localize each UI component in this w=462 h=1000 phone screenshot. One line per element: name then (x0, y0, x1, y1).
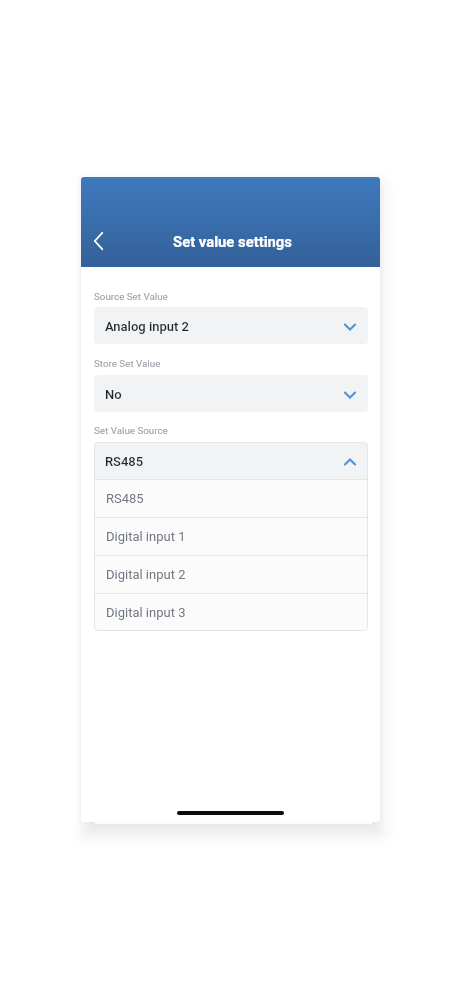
staticText: Analog input 2 (105, 319, 190, 334)
button[interactable]: RS485 (94, 480, 368, 517)
staticText: Set value settings (83, 233, 380, 250)
button[interactable]: Digital input 2 (94, 556, 368, 593)
staticText: Source Set Value (94, 291, 168, 302)
button[interactable]: No (94, 375, 368, 412)
staticText: Digital input 1 (106, 529, 186, 544)
staticText: Digital input 2 (106, 567, 186, 582)
button[interactable]: RS485 (94, 442, 368, 479)
staticText: Set Value Source (94, 425, 168, 436)
staticText: No (105, 387, 122, 402)
button[interactable]: Digital input 3 (94, 594, 368, 631)
button[interactable]: Digital input 1 (94, 518, 368, 555)
button[interactable]: Analog input 2 (94, 307, 368, 344)
staticText: RS485 (106, 491, 144, 506)
button[interactable]: Back (83, 225, 115, 257)
staticText: Digital input 3 (106, 605, 186, 620)
staticText: RS485 (105, 454, 144, 469)
staticText: Store Set Value (94, 358, 161, 369)
